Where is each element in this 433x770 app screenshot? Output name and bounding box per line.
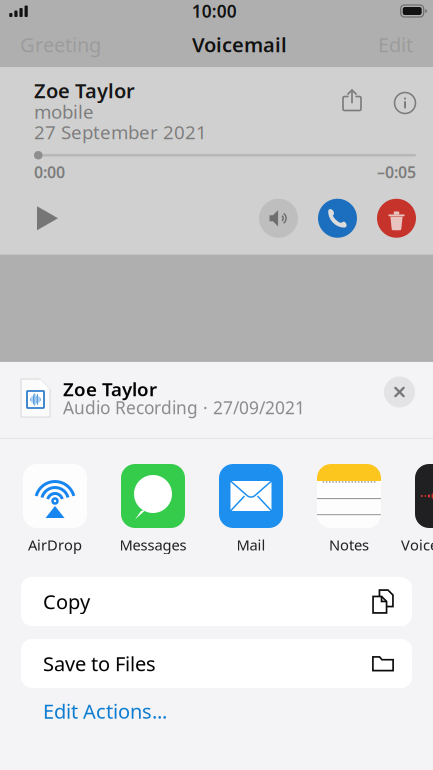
staticText: Edit <box>378 31 413 58</box>
button[interactable]: AirDrop <box>23 464 87 554</box>
staticText: 0:00 <box>34 161 65 183</box>
button[interactable]: Info <box>389 80 421 112</box>
button[interactable]: Play <box>33 202 62 234</box>
button[interactable]: Call back <box>318 199 357 238</box>
button[interactable]: Copy <box>0 577 433 626</box>
staticText: 10:00 <box>192 0 237 22</box>
staticText: Messages <box>119 535 186 554</box>
button[interactable]: Voice Memos <box>415 464 433 554</box>
staticText: 27 September 2021 <box>34 120 207 144</box>
button[interactable]: Messages <box>121 464 185 554</box>
staticText: –0:05 <box>377 161 416 183</box>
staticText: AirDrop <box>28 535 82 554</box>
button[interactable]: Delete <box>377 199 416 238</box>
staticText: Notes <box>329 535 369 554</box>
staticText: Greeting <box>20 31 101 58</box>
staticText: Zoe Taylor <box>34 77 135 104</box>
button[interactable]: Edit Actions... <box>0 688 433 734</box>
button[interactable]: Notes <box>317 464 381 554</box>
button[interactable]: Speaker <box>259 199 298 238</box>
staticText: mobile <box>34 99 94 124</box>
button[interactable]: Mail <box>219 464 283 554</box>
staticText: Edit Actions... <box>43 698 167 724</box>
staticText: Zoe Taylor <box>63 377 157 401</box>
button[interactable]: Greeting <box>14 23 107 66</box>
staticText: Voicemail <box>192 31 287 58</box>
button[interactable]: Share <box>337 80 367 113</box>
staticText: Voice Memos <box>401 535 433 554</box>
staticText: Save to Files <box>43 650 156 677</box>
button[interactable]: Save to Files <box>0 639 433 688</box>
button[interactable]: Close <box>384 382 415 413</box>
button[interactable]: Edit <box>372 23 419 66</box>
staticText: Copy <box>43 588 90 615</box>
staticText: Mail <box>236 535 265 554</box>
staticText: Audio Recording · 27/09/2021 <box>63 396 305 419</box>
